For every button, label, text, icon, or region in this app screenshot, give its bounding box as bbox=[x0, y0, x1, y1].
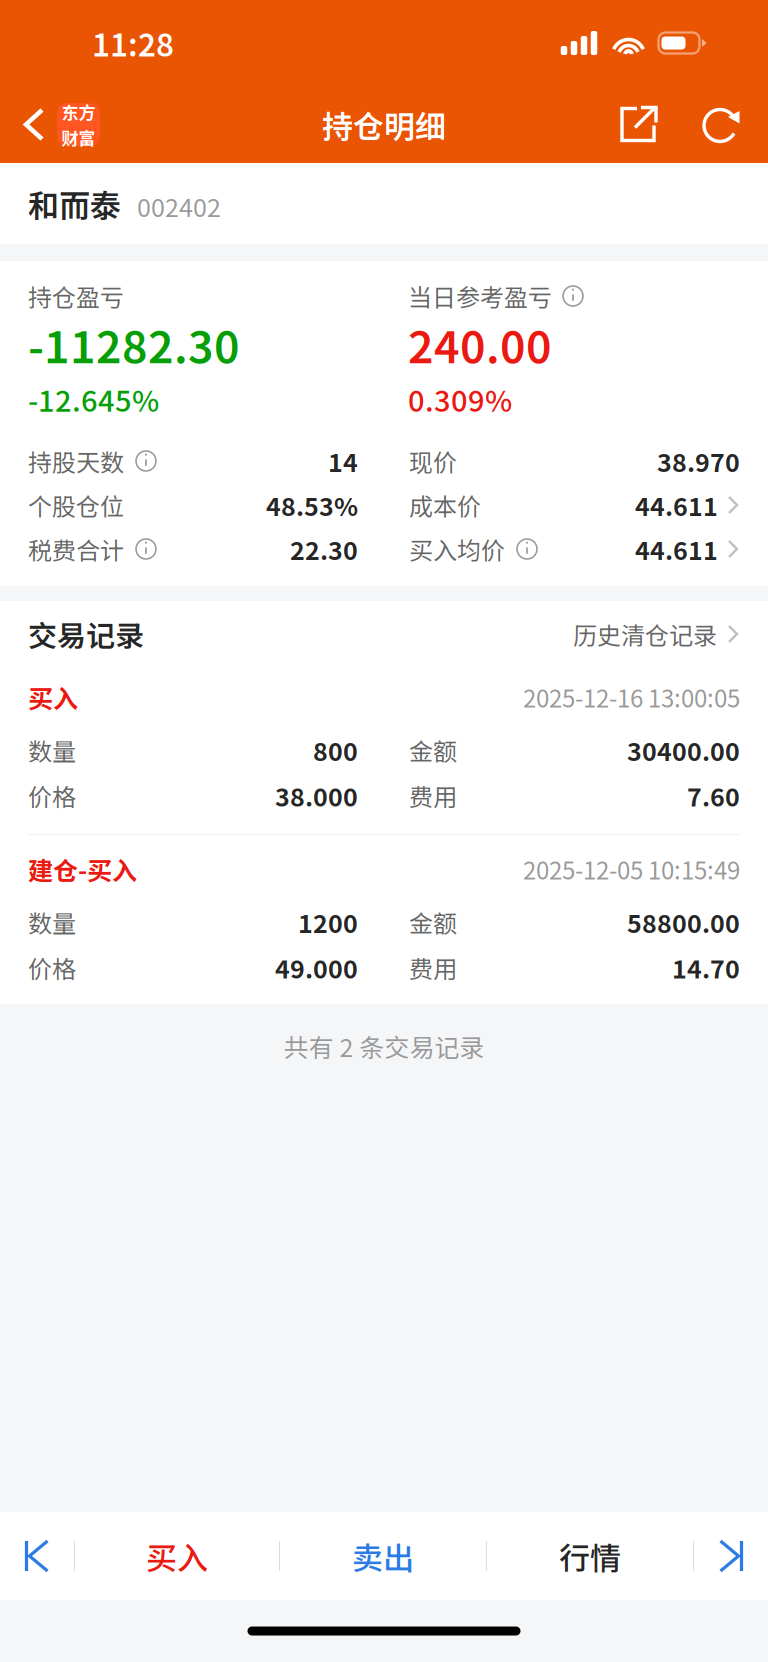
staticText: 成本价 bbox=[409, 488, 481, 522]
staticText: 建仓-买入 bbox=[28, 851, 137, 887]
staticText: 持仓盈亏 bbox=[28, 279, 124, 313]
staticText: 共有 2 条交易记录 bbox=[283, 1028, 484, 1064]
staticText: 价格 bbox=[28, 950, 76, 985]
staticText: 14.70 bbox=[672, 949, 740, 986]
staticText: 44.611 bbox=[635, 531, 718, 567]
staticText: 数量 bbox=[28, 733, 76, 767]
button[interactable]: Back bbox=[0, 86, 110, 163]
staticText: -11282.30 bbox=[28, 312, 240, 376]
staticText: 费用 bbox=[409, 950, 457, 985]
staticText: 买入 bbox=[28, 679, 78, 715]
staticText: 49.000 bbox=[275, 949, 358, 986]
staticText: 现价 bbox=[409, 444, 457, 478]
staticText: -12.645% bbox=[28, 378, 159, 420]
staticText: 240.00 bbox=[408, 312, 552, 376]
staticText: 金额 bbox=[409, 733, 457, 767]
staticText: 持仓明细 bbox=[322, 102, 446, 147]
staticText: 22.30 bbox=[290, 531, 358, 567]
button[interactable]: 买入均价 bbox=[409, 527, 740, 571]
staticText: 价格 bbox=[28, 778, 76, 813]
staticText: 和而泰 bbox=[28, 181, 121, 226]
staticText: 费用 bbox=[409, 778, 457, 813]
staticText: 历史清仓记录 bbox=[573, 617, 717, 651]
staticText: 7.60 bbox=[687, 777, 740, 814]
staticText: 48.53% bbox=[266, 487, 358, 523]
staticText: 800 bbox=[313, 732, 358, 768]
button[interactable]: 成本价 bbox=[409, 483, 740, 527]
staticText: 11:28 bbox=[92, 21, 174, 65]
staticText: 38.000 bbox=[275, 777, 358, 814]
button[interactable]: Refresh bbox=[688, 86, 756, 163]
staticText: 买入 bbox=[146, 1534, 208, 1578]
staticText: 财富 bbox=[61, 125, 95, 150]
staticText: 数量 bbox=[28, 905, 76, 939]
staticText: 持股天数 bbox=[28, 444, 124, 478]
staticText: 14 bbox=[328, 443, 358, 479]
staticText: 金额 bbox=[409, 905, 457, 939]
staticText: 当日参考盈亏 bbox=[408, 279, 552, 313]
button[interactable]: 行情 bbox=[487, 1512, 693, 1600]
button[interactable]: Share bbox=[589, 86, 688, 163]
staticText: 卖出 bbox=[352, 1534, 414, 1578]
button[interactable]: First page bbox=[0, 1512, 74, 1600]
button[interactable]: 卖出 bbox=[280, 1512, 486, 1600]
staticText: 税费合计 bbox=[28, 532, 124, 566]
staticText: 交易记录 bbox=[28, 613, 144, 655]
staticText: 0.309% bbox=[408, 378, 512, 420]
button[interactable]: 历史清仓记录 bbox=[573, 601, 740, 667]
staticText: 2025-12-16 13:00:05 bbox=[523, 680, 740, 714]
staticText: 买入均价 bbox=[409, 532, 505, 566]
staticText: 2025-12-05 10:15:49 bbox=[523, 852, 740, 886]
staticText: 东方 bbox=[61, 99, 95, 124]
staticText: 38.970 bbox=[657, 443, 740, 479]
staticText: 58800.00 bbox=[627, 904, 740, 940]
staticText: 44.611 bbox=[635, 487, 718, 523]
staticText: 30400.00 bbox=[627, 732, 740, 768]
button[interactable]: Last page bbox=[694, 1512, 768, 1600]
staticText: 个股仓位 bbox=[28, 488, 124, 522]
staticText: 1200 bbox=[298, 904, 358, 940]
button[interactable]: 买入 bbox=[75, 1512, 279, 1600]
staticText: 002402 bbox=[137, 188, 221, 224]
staticText: 行情 bbox=[559, 1534, 621, 1578]
